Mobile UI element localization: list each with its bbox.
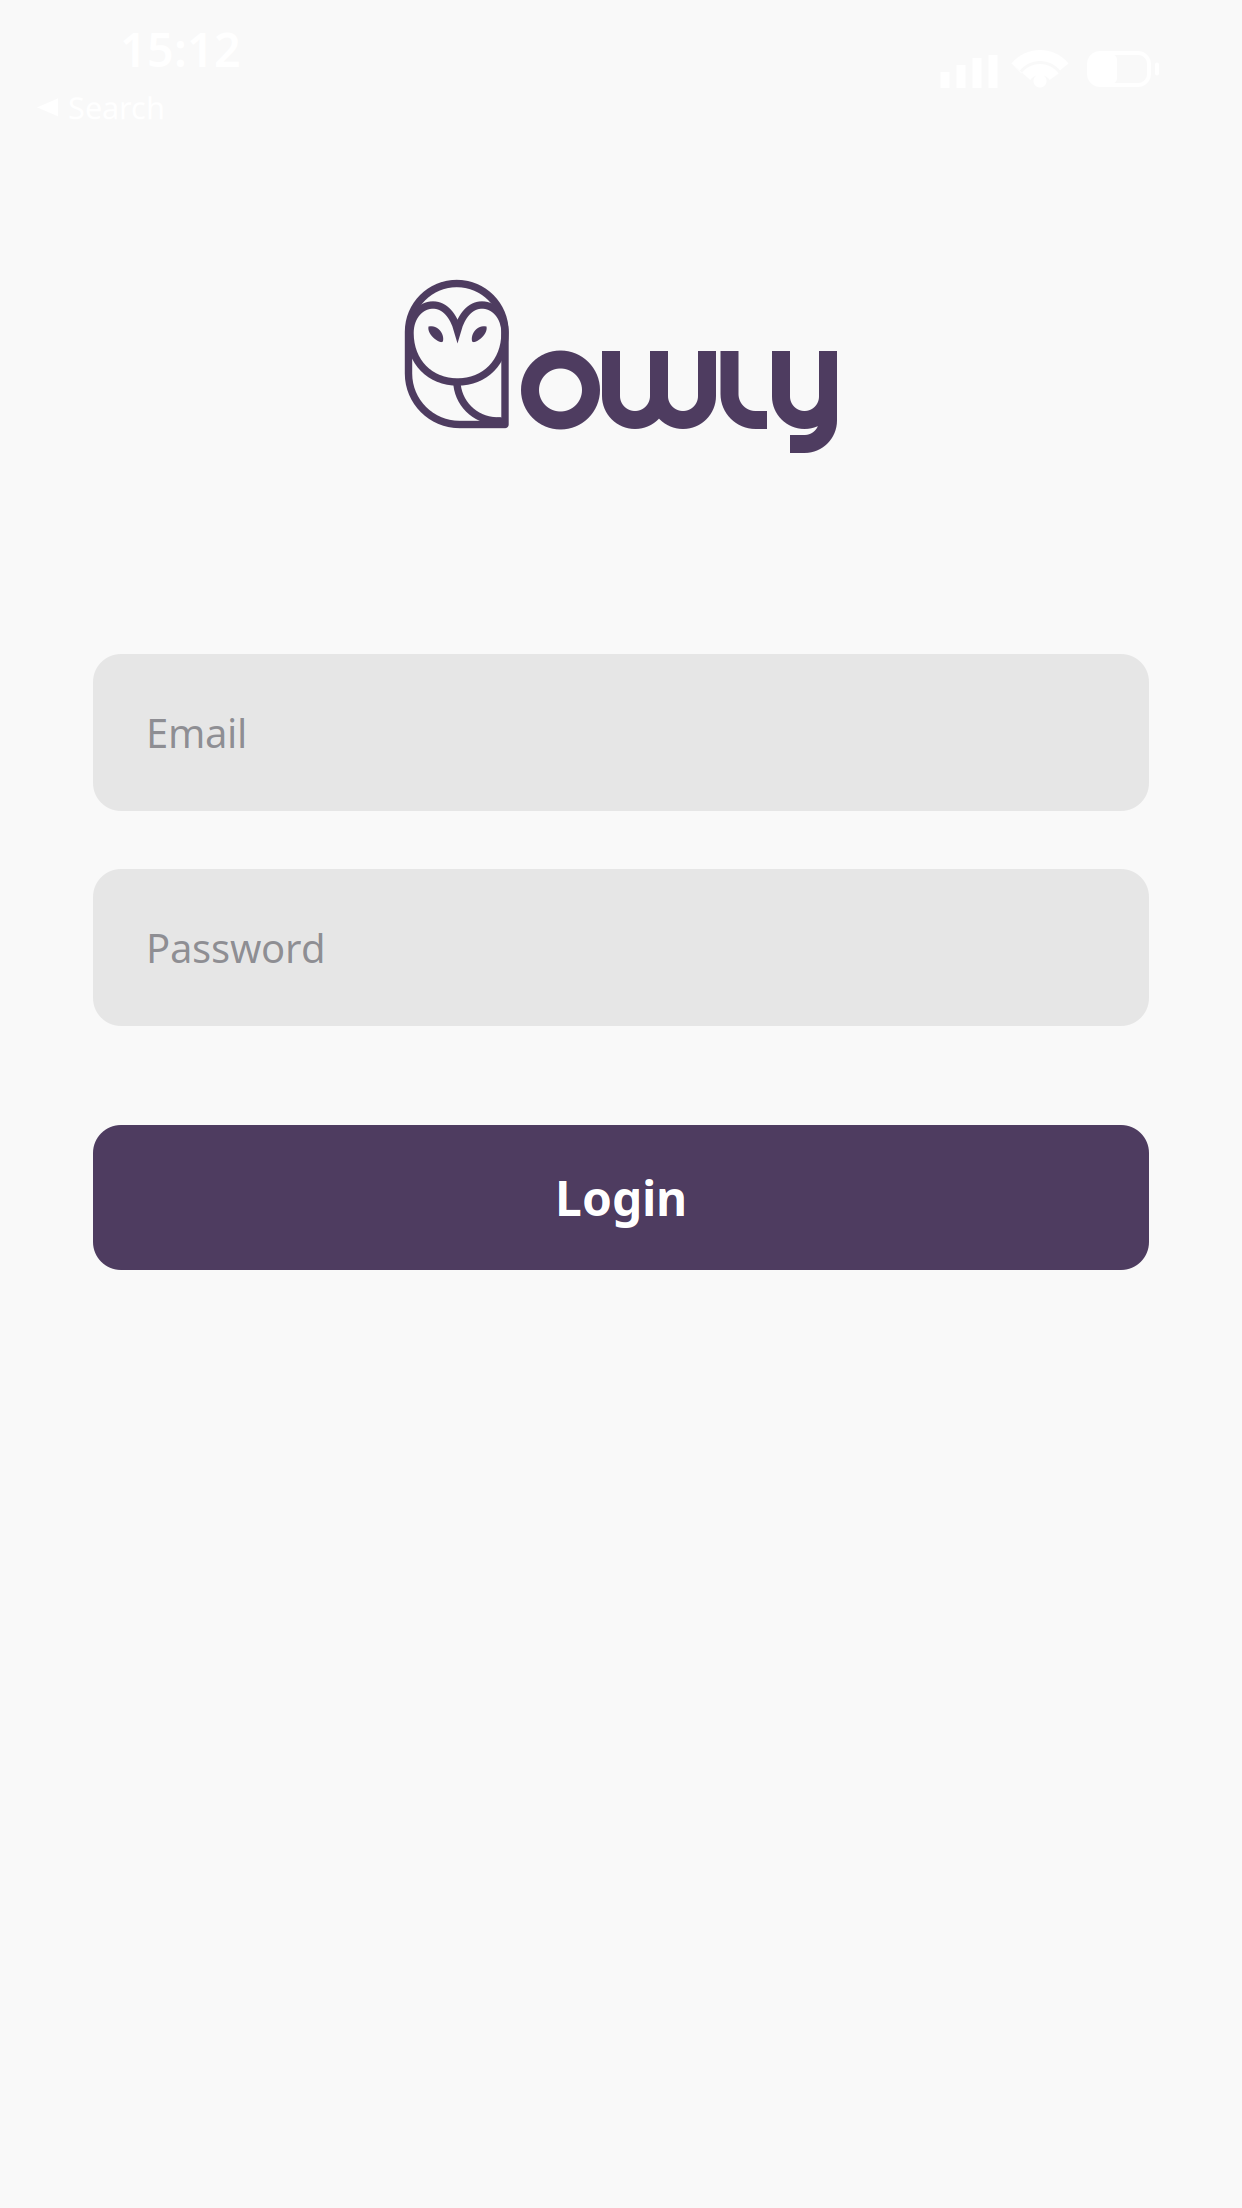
staticText: Password — [146, 921, 326, 974]
button[interactable]: Email — [93, 654, 1149, 811]
button[interactable]: Password — [93, 869, 1149, 1026]
button[interactable]: Login — [93, 1125, 1149, 1270]
staticText: Login — [555, 1166, 687, 1229]
staticText: Email — [146, 706, 247, 759]
